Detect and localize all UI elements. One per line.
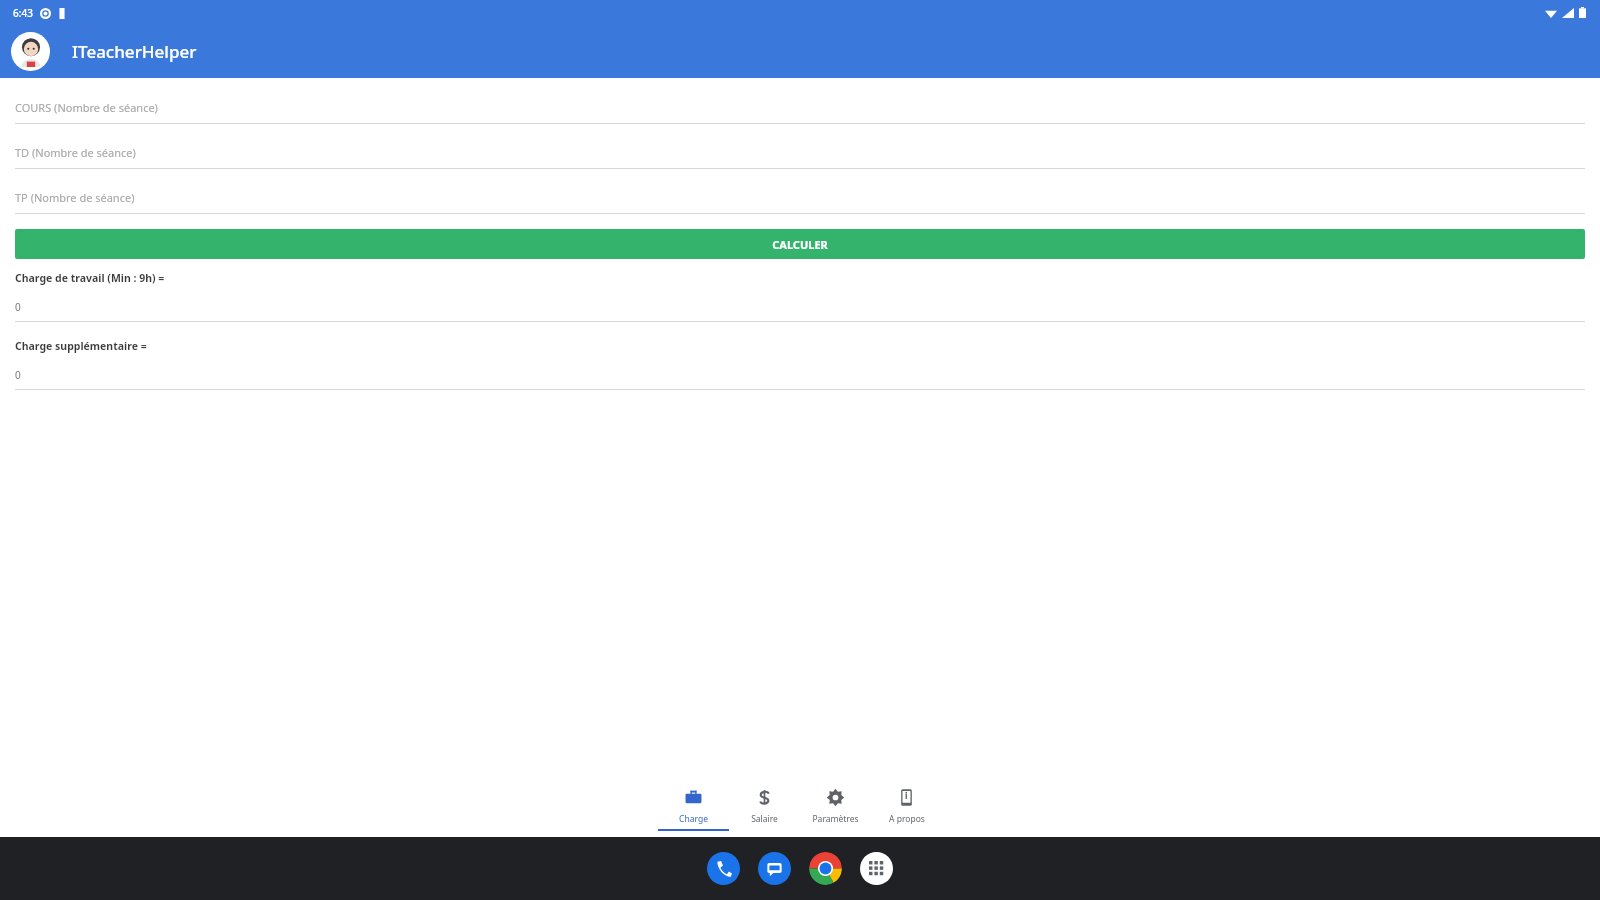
button[interactable]: Téléphone [707, 852, 740, 885]
button[interactable]: Salaire [729, 782, 800, 829]
staticText: ITeacherHelper [72, 40, 197, 63]
button[interactable]: Paramètres [800, 782, 871, 829]
button[interactable]: TD (Nombre de séance) [15, 145, 1585, 169]
staticText: A propos [889, 813, 925, 825]
button[interactable]: TP (Nombre de séance) [15, 190, 1585, 214]
staticText: 0 [15, 300, 21, 314]
button[interactable]: Profil [11, 32, 50, 71]
button[interactable]: Charge [658, 782, 729, 831]
staticText: 6:43 [13, 6, 33, 20]
staticText: 0 [15, 368, 21, 382]
button[interactable]: CALCULER [15, 229, 1585, 259]
button[interactable]: Chrome [809, 852, 842, 885]
button[interactable]: Messages [758, 852, 791, 885]
staticText: TD (Nombre de séance) [15, 145, 136, 160]
staticText: CALCULER [772, 237, 828, 252]
staticText: Charge [679, 813, 708, 825]
button[interactable]: A propos [871, 782, 942, 829]
staticText: TP (Nombre de séance) [15, 190, 135, 205]
staticText: Charge supplémentaire = [15, 339, 147, 353]
staticText: COURS (Nombre de séance) [15, 100, 158, 115]
button[interactable]: COURS (Nombre de séance) [15, 100, 1585, 124]
button[interactable]: Toutes les applications [860, 852, 893, 885]
staticText: Paramètres [812, 813, 859, 825]
staticText: Salaire [751, 813, 778, 825]
staticText: Charge de travail (Min : 9h) = [15, 271, 165, 285]
